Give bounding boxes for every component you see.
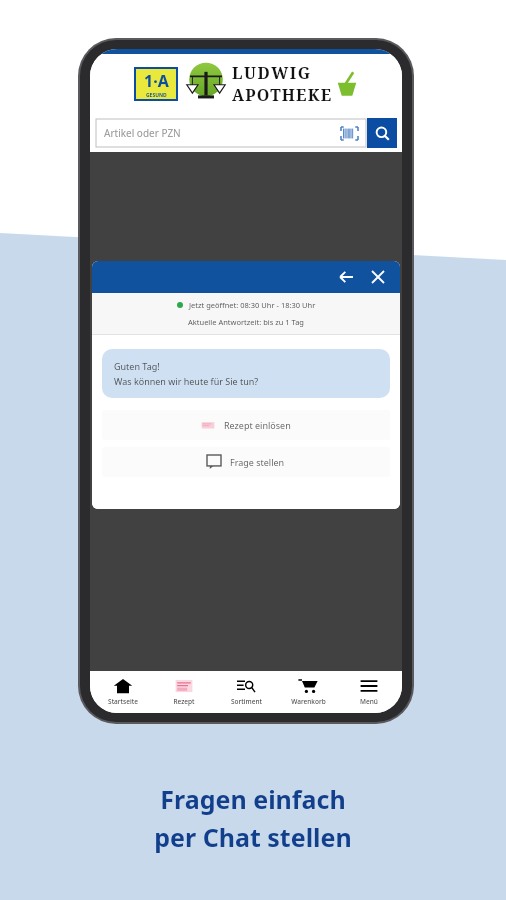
- staticText: Was können wir heute für Sie tun?: [114, 375, 259, 387]
- button[interactable]: Zurück: [334, 265, 358, 289]
- staticText: GESUND: [146, 92, 167, 99]
- button[interactable]: Artikel oder PZN: [96, 119, 366, 147]
- button[interactable]: Frage stellen: [102, 447, 390, 477]
- button[interactable]: Sortiment: [217, 671, 275, 713]
- staticText: Jetzt geöffnet: 08:30 Uhr - 18:30 Uhr: [189, 300, 316, 310]
- staticText: LUDWIG: [232, 62, 312, 84]
- button[interactable]: Startseite: [94, 671, 152, 713]
- staticText: Artikel oder PZN: [104, 126, 181, 140]
- staticText: Rezept: [173, 697, 195, 706]
- staticText: Rezept einlösen: [224, 419, 291, 431]
- staticText: Startseite: [108, 697, 138, 706]
- button[interactable]: Suchen: [367, 118, 397, 148]
- staticText: Guten Tag!: [114, 360, 160, 372]
- staticText: APOTHEKE: [232, 84, 333, 106]
- staticText: Frage stellen: [230, 456, 285, 468]
- staticText: Menü: [360, 697, 378, 706]
- staticText: Aktuelle Antwortzeit: bis zu 1 Tag: [188, 317, 304, 327]
- button[interactable]: Rezept einlösen: [102, 410, 390, 440]
- button[interactable]: Schließen: [366, 265, 390, 289]
- button[interactable]: Warenkorb: [279, 671, 337, 713]
- staticText: Fragen einfach: [160, 782, 346, 816]
- staticText: Sortiment: [231, 697, 262, 706]
- staticText: 1·A: [144, 70, 169, 92]
- button[interactable]: Menü: [340, 671, 398, 713]
- staticText: per Chat stellen: [154, 820, 352, 854]
- staticText: Warenkorb: [291, 697, 326, 706]
- button[interactable]: Rezept: [155, 671, 213, 713]
